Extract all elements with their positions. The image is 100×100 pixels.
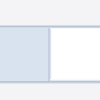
- button[interactable]: Detail pane: [50, 28, 100, 81]
